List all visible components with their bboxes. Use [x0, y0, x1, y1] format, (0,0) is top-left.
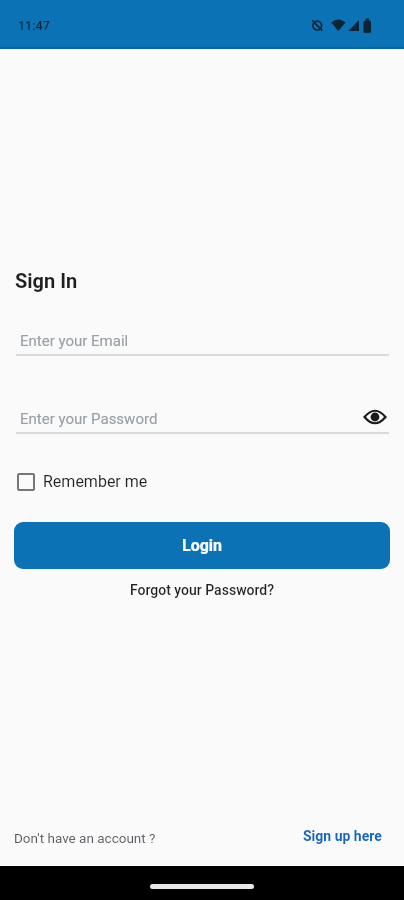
staticText: Login [182, 536, 223, 555]
staticText: Enter your Password [20, 410, 158, 428]
button[interactable]: Enter your Password [16, 404, 389, 434]
button[interactable] [358, 402, 392, 432]
button[interactable]: Enter your Email [16, 326, 389, 356]
staticText: Sign up here [303, 828, 382, 844]
button[interactable]: Forgot your Password? [130, 582, 275, 598]
staticText: Don't have an account ? [14, 830, 156, 846]
button[interactable]: Remember me [17, 472, 148, 491]
staticText: Sign In [15, 269, 78, 292]
button[interactable]: Login [14, 522, 390, 569]
button[interactable]: Sign up here [303, 828, 382, 844]
staticText: Remember me [43, 472, 148, 491]
staticText: 11:47 [18, 18, 50, 33]
staticText: Enter your Email [20, 332, 129, 350]
